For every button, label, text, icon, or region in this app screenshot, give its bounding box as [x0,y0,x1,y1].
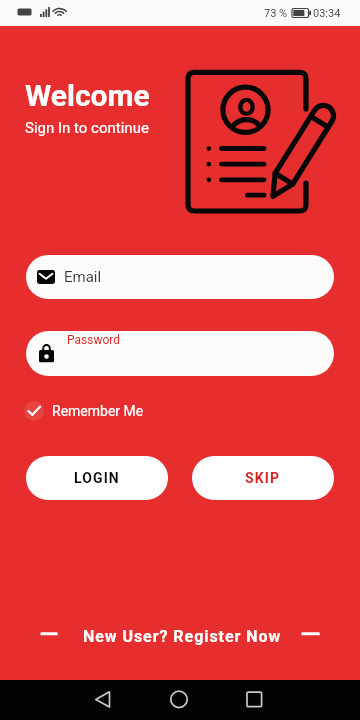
button[interactable]: Remember Me [24,401,144,421]
staticText: SKIP [245,470,281,486]
staticText: 03:34 [313,7,341,20]
staticText: LOGIN [74,470,120,486]
staticText: Password [67,333,121,347]
staticText: Welcome [25,78,150,113]
staticText: Remember Me [52,403,144,419]
staticText: New User? Register Now [83,627,282,646]
button[interactable]: Email [26,255,334,299]
staticText: Email [64,268,102,286]
button[interactable]: New User? Register Now [34,622,326,646]
button[interactable]: SKIP [192,456,334,500]
staticText: Sign In to continue [25,119,149,137]
button[interactable]: LOGIN [26,456,168,500]
staticText: 73 % [264,7,288,20]
button[interactable] [26,331,334,376]
